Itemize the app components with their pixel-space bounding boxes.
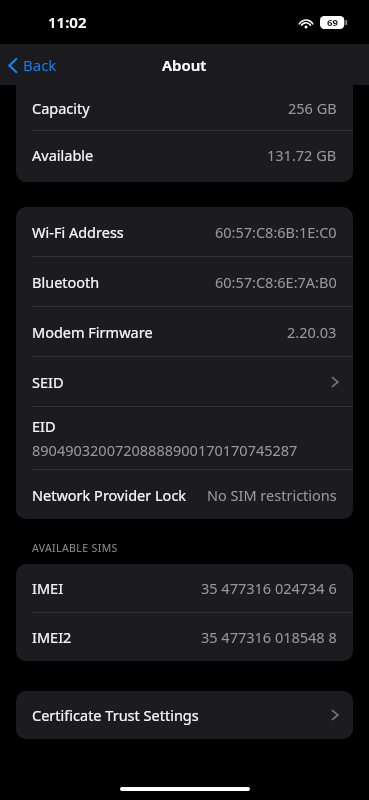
button[interactable]: Available [16,131,353,179]
staticText: Capacity [32,98,90,118]
staticText: 35 477316 018548 8 [201,627,337,647]
staticText: 60:57:C8:6B:1E:C0 [215,222,337,242]
button[interactable]: Network Provider Lock [16,470,353,519]
staticText: Wi-Fi Address [32,222,124,242]
button[interactable]: IMEI2 [16,613,353,661]
staticText: AVAILABLE SIMS [32,541,118,555]
button[interactable]: EID [16,407,353,469]
staticText: IMEI [32,578,64,598]
staticText: SEID [32,372,64,392]
staticText: IMEI2 [32,627,72,647]
staticText: 2.20.03 [287,322,337,342]
button[interactable]: Bluetooth [16,257,353,306]
staticText: 69 [327,16,338,29]
staticText: Back [23,55,57,75]
other: Certificate Trust Settings [331,708,339,722]
other: SEID [331,375,339,389]
staticText: 256 GB [288,98,337,118]
staticText: About [162,55,207,75]
staticText: 60:57:C8:6E:7A:B0 [215,272,337,292]
button[interactable]: SEID [16,357,353,406]
button[interactable]: Capacity [16,85,353,130]
staticText: 131.72 GB [267,145,337,165]
button[interactable]: Modem Firmware [16,307,353,356]
button[interactable]: Certificate Trust Settings [16,691,353,739]
staticText: EID [32,416,56,436]
button[interactable]: IMEI [16,564,353,612]
staticText: Modem Firmware [32,322,153,342]
staticText: 11:02 [48,12,87,32]
staticText: Available [32,145,94,165]
staticText: Network Provider Lock [32,485,187,505]
staticText: Bluetooth [32,272,100,292]
button[interactable]: Wi-Fi Address [16,207,353,256]
other: Wi-Fi [298,17,314,29]
staticText: 35 477316 024734 6 [201,578,337,598]
button[interactable]: Back [0,51,67,79]
staticText: 89049032007208888900170170745287 [32,440,298,460]
staticText: Certificate Trust Settings [32,705,199,725]
staticText: No SIM restrictions [207,485,337,505]
